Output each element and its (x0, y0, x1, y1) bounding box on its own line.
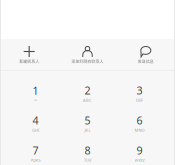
staticText: 7 (32, 143, 38, 157)
button[interactable]: 5 (61, 108, 113, 138)
staticText: 添加到现有联系人 (71, 59, 103, 64)
staticText: JKL (84, 127, 90, 133)
staticText: PQRS (30, 157, 40, 163)
button[interactable]: 9 (113, 138, 165, 165)
staticText: 6 (136, 113, 142, 127)
staticText: MNO (134, 127, 144, 133)
staticText: ∞ (34, 98, 37, 102)
staticText: WXYZ (134, 157, 144, 163)
staticText: 发送信息 (138, 59, 154, 64)
button[interactable]: 7 (9, 138, 61, 165)
button[interactable]: 8 (61, 138, 113, 165)
staticText: DEF (136, 97, 143, 103)
button[interactable]: 4 (9, 108, 61, 138)
staticText: 5 (84, 113, 90, 127)
button[interactable]: 新建联系人 (0, 44, 58, 66)
button[interactable]: 3 (113, 78, 165, 108)
staticText: 2 (84, 83, 90, 97)
button[interactable]: 2 (61, 78, 113, 108)
staticText: TUV (84, 157, 91, 163)
staticText: 4 (32, 113, 38, 127)
staticText: 3 (136, 83, 142, 97)
button[interactable]: 6 (113, 108, 165, 138)
staticText: 1 (32, 84, 38, 98)
staticText: ABC (83, 97, 92, 103)
staticText: GHI (32, 127, 39, 133)
button[interactable]: 1 (9, 78, 61, 108)
button[interactable]: 发送信息 (117, 44, 175, 66)
staticText: 8 (84, 143, 90, 157)
staticText: 新建联系人 (19, 59, 39, 64)
button[interactable]: 添加到现有联系人 (58, 44, 117, 66)
staticText: 9 (136, 143, 142, 157)
